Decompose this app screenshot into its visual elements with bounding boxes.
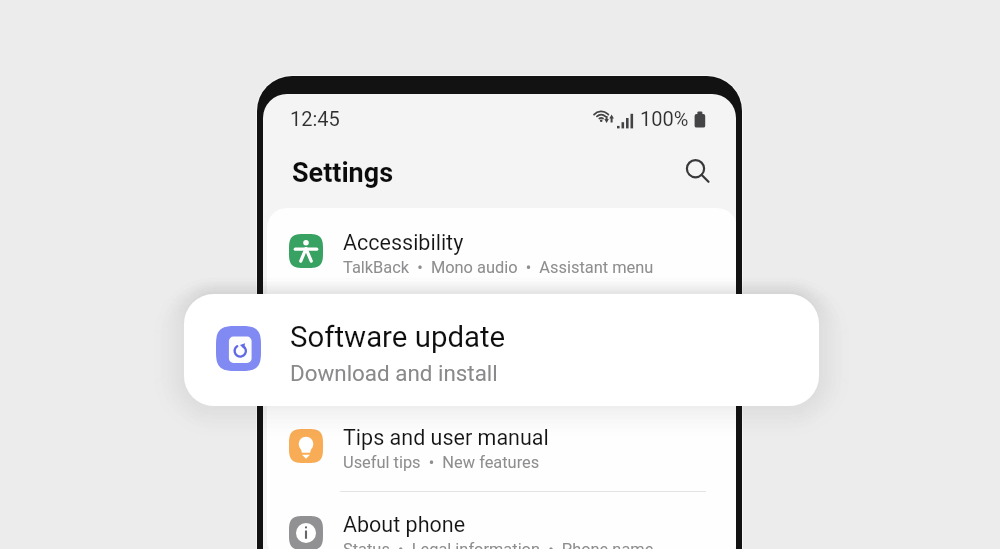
button[interactable]: Search [673, 146, 725, 198]
button[interactable]: Tips and user manual [267, 403, 736, 489]
staticText: Accessibility [343, 230, 464, 255]
staticText: Software update [290, 320, 506, 354]
staticText: About phone [343, 512, 466, 537]
staticText: TalkBack • Mono audio • Assistant menu [343, 258, 654, 277]
button[interactable]: About phone [267, 490, 736, 549]
staticText: Useful tips • New features [343, 453, 540, 472]
staticText: 12:45 [290, 107, 340, 130]
button[interactable]: Accessibility [267, 208, 736, 294]
staticText: Settings [292, 157, 394, 189]
staticText: 100% [640, 107, 689, 130]
staticText: Tips and user manual [343, 425, 549, 450]
staticText: Download and install [290, 360, 498, 386]
staticText: Status • Legal information • Phone name [343, 540, 654, 549]
button[interactable]: Software update [184, 294, 819, 406]
